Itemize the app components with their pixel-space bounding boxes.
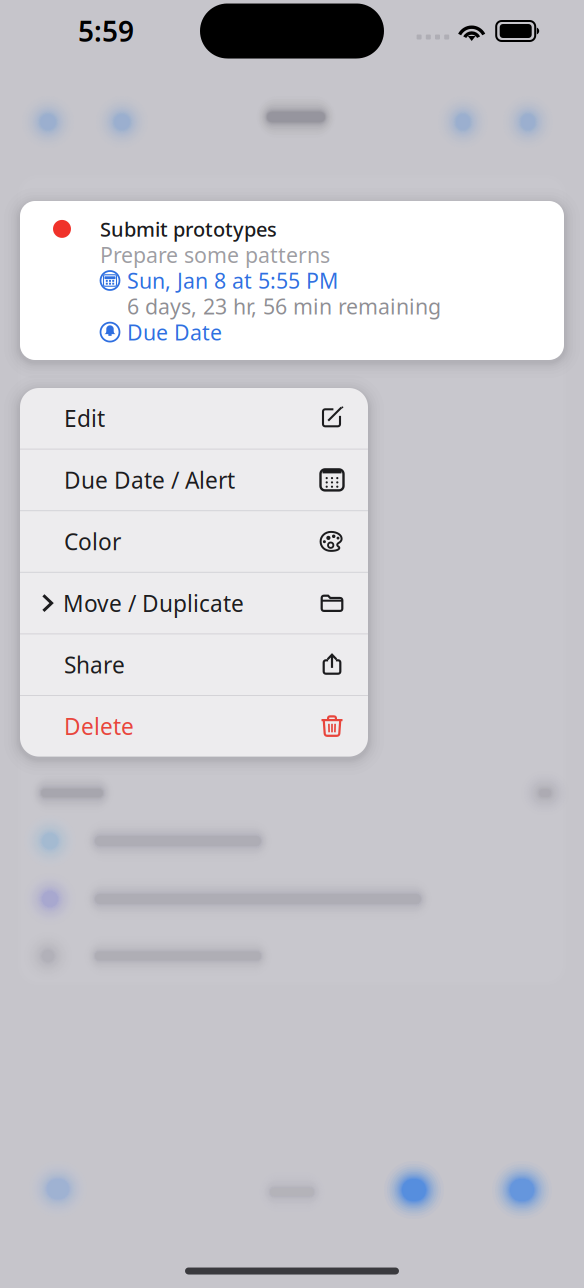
button[interactable]: Move / Duplicate <box>20 573 368 633</box>
staticText: 6 days, 23 hr, 56 min remaining <box>127 292 441 320</box>
button[interactable]: Color <box>20 511 368 572</box>
staticText: 5:59 <box>78 12 134 50</box>
staticText: Move / Duplicate <box>63 588 244 618</box>
button[interactable]: Edit <box>20 388 368 449</box>
staticText: Prepare some patterns <box>100 240 330 269</box>
staticText: Submit prototypes <box>100 216 277 242</box>
staticText: Color <box>64 526 121 556</box>
button[interactable]: Delete <box>20 696 368 757</box>
staticText: Edit <box>64 403 105 433</box>
button[interactable]: Share <box>20 634 368 695</box>
staticText: Delete <box>64 711 134 741</box>
staticText: Due Date <box>127 318 222 346</box>
staticText: Share <box>64 650 125 680</box>
staticText: Sun, Jan 8 at 5:55 PM <box>127 266 338 295</box>
staticText: Due Date / Alert <box>64 465 235 495</box>
button[interactable]: Due Date / Alert <box>20 450 368 510</box>
